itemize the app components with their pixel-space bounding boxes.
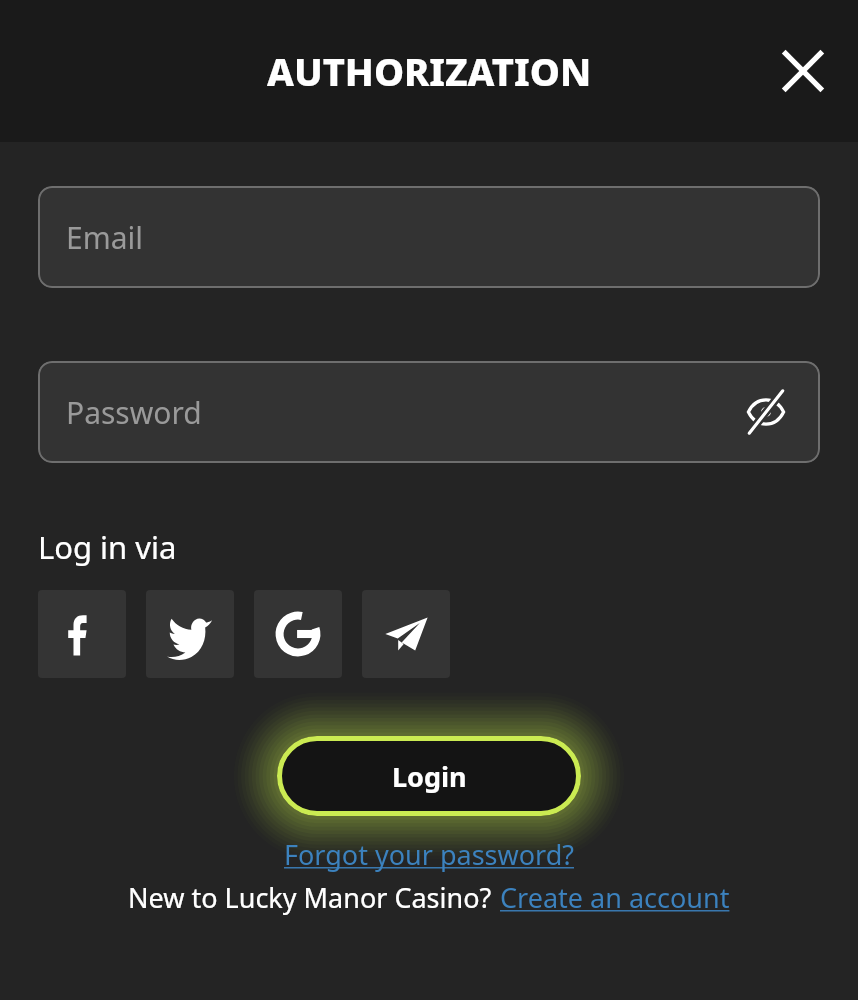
button[interactable]: Create an account: [500, 879, 730, 916]
staticText: Password: [66, 392, 202, 433]
staticText: Email: [66, 217, 144, 258]
staticText: Login: [392, 758, 467, 795]
button[interactable]: Login: [277, 736, 581, 816]
staticText: New to Lucky Manor Casino?: [128, 879, 492, 916]
button[interactable]: Log in with Google: [254, 590, 342, 678]
button[interactable]: Log in with Facebook: [38, 590, 126, 678]
staticText: Create an account: [500, 879, 730, 916]
button[interactable]: Log in with Twitter: [146, 590, 234, 678]
staticText: Log in via: [38, 526, 177, 568]
staticText: AUTHORIZATION: [267, 45, 592, 97]
button[interactable]: Password: [38, 361, 820, 463]
button[interactable]: Log in with Telegram: [362, 590, 450, 678]
button[interactable]: Email: [38, 186, 820, 288]
button[interactable]: Show password: [742, 388, 790, 436]
staticText: Forgot your password?: [284, 836, 575, 873]
button[interactable]: Forgot your password?: [280, 834, 579, 875]
button[interactable]: Close: [772, 40, 834, 102]
